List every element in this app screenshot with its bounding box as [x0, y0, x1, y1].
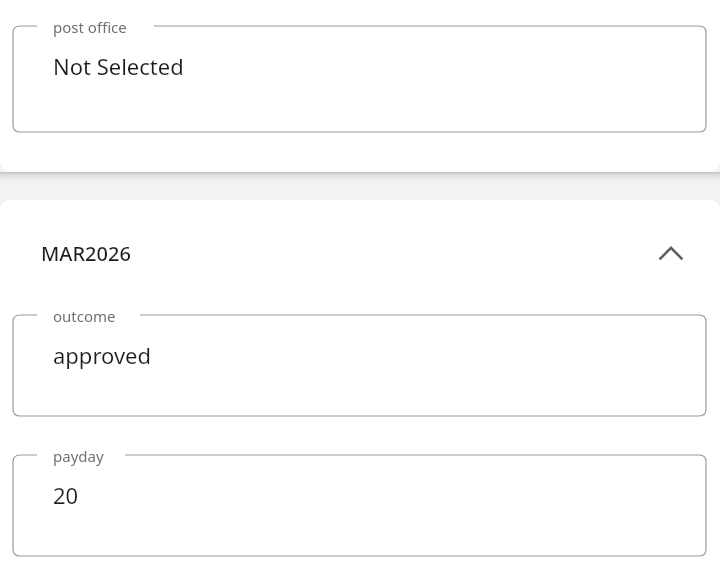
button[interactable]: post office	[13, 17, 706, 132]
other: Collapse MAR2026	[656, 238, 686, 268]
staticText: MAR2026	[41, 240, 656, 267]
staticText: Not Selected	[53, 51, 184, 81]
staticText: approved	[53, 340, 152, 370]
staticText: post office	[53, 17, 127, 37]
button[interactable]: MAR2026	[0, 200, 720, 306]
staticText: 20	[53, 480, 79, 510]
staticText: outcome	[53, 306, 116, 326]
staticText: payday	[53, 446, 104, 466]
button[interactable]: payday	[13, 446, 706, 556]
button[interactable]: outcome	[13, 306, 706, 416]
